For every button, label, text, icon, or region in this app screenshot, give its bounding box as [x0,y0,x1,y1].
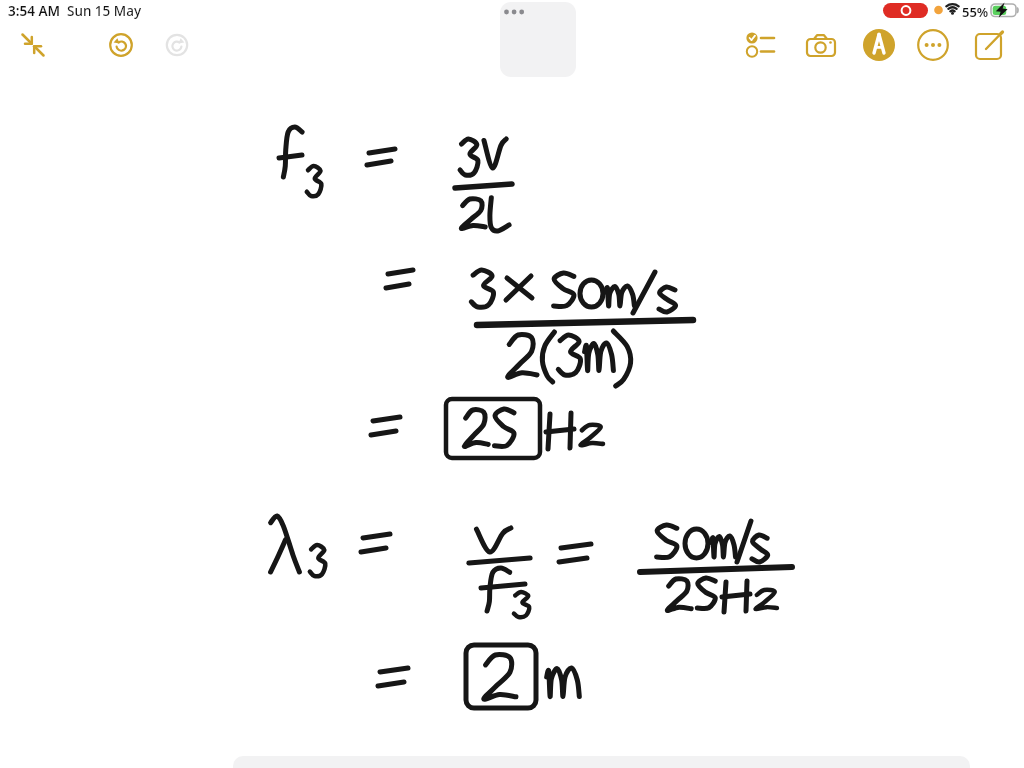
button[interactable] [500,2,576,77]
button[interactable] [155,23,199,67]
button[interactable] [799,23,843,67]
button[interactable] [11,23,55,67]
staticText: 3:54 AM [8,2,61,20]
button[interactable] [857,23,901,67]
button[interactable] [738,23,782,67]
button[interactable] [99,23,143,67]
staticText: Sun 15 May [67,2,142,20]
button[interactable] [911,23,955,67]
button[interactable] [967,23,1011,67]
staticText: 55% [962,3,989,21]
